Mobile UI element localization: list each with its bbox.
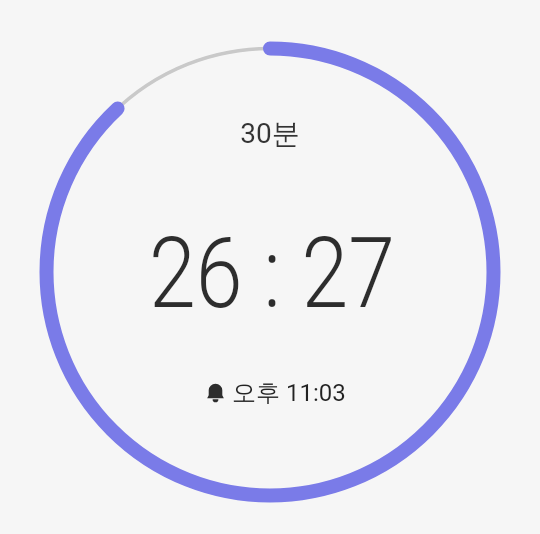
staticText: 오후 11:03	[232, 378, 346, 408]
button[interactable]: 오후 11:03	[207, 378, 346, 408]
staticText: 30분	[0, 116, 540, 151]
staticText: 26 : 27	[40, 216, 504, 331]
